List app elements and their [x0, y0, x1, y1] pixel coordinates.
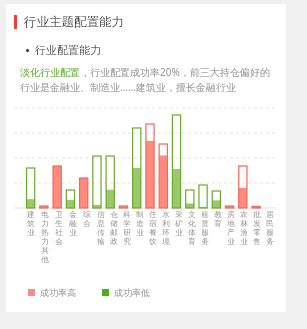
staticText: 融 [69, 219, 77, 228]
staticText: 育 [214, 219, 222, 228]
staticText: 务 [201, 237, 209, 246]
staticText: 业 [240, 237, 248, 246]
staticText: 合 [83, 219, 91, 228]
staticText: 成功率高 [40, 287, 76, 298]
staticText: 饮 [149, 237, 157, 246]
staticText: 租 [201, 210, 209, 219]
staticText: 赁 [201, 219, 209, 228]
staticText: 息 [97, 219, 105, 228]
staticText: 水 [162, 210, 170, 219]
staticText: 渔 [240, 228, 248, 237]
staticText: 行业配置能力 [35, 43, 101, 57]
staticText: 业 [136, 228, 144, 237]
staticText: 体 [188, 228, 196, 237]
staticText: 售 [253, 237, 261, 246]
staticText: 文 [188, 210, 196, 219]
button[interactable]: 行业主题配置能力 [6, 14, 286, 30]
staticText: 务 [266, 237, 274, 246]
staticText: 服 [266, 228, 274, 237]
staticText: 电 [41, 210, 49, 219]
staticText: 零 [253, 228, 261, 237]
staticText: 地 [227, 219, 235, 228]
staticText: 宿 [149, 219, 157, 228]
staticText: 农 [240, 210, 248, 219]
staticText: 其 [41, 246, 49, 255]
button[interactable]: 成功率高 [28, 287, 76, 298]
staticText: 卫 [55, 210, 63, 219]
staticText: 化 [188, 219, 196, 228]
staticText: 输 [97, 237, 105, 246]
staticText: 金 [69, 210, 77, 219]
staticText: 发 [253, 219, 261, 228]
staticText: 业 [27, 228, 35, 237]
staticText: 科 [123, 210, 131, 219]
staticText: 传 [97, 228, 105, 237]
staticText: 究 [123, 237, 131, 246]
staticText: 生 [55, 219, 63, 228]
staticText: 居 [266, 210, 274, 219]
staticText: 产 [227, 228, 235, 237]
staticText: 业 [175, 228, 183, 237]
staticText: 采 [175, 210, 183, 219]
staticText: 建 [27, 210, 35, 219]
staticText: 育 [188, 237, 196, 246]
button[interactable]: 成功率低 [102, 287, 150, 298]
staticText: 利 [162, 219, 170, 228]
staticText: 行业主题配置能力 [24, 14, 124, 30]
staticText: 餐 [149, 228, 157, 237]
staticText: 业 [69, 228, 77, 237]
staticText: 力 [41, 237, 49, 246]
staticText: 成功率低 [114, 287, 150, 298]
staticText: 社 [55, 228, 63, 237]
staticText: 教 [214, 210, 222, 219]
staticText: 力 [41, 219, 49, 228]
staticText: 业 [227, 237, 235, 246]
staticText: 淡化行业配置，行业配置成功率20%，前三大持仓偏好的行业是金融业、制造业……建筑… [20, 65, 278, 94]
staticText: 环 [162, 228, 170, 237]
staticText: 林 [240, 219, 248, 228]
staticText: 研 [123, 228, 131, 237]
staticText: 矿 [175, 219, 183, 228]
staticText: 储 [110, 219, 118, 228]
staticText: 热 [41, 228, 49, 237]
staticText: 房 [227, 210, 235, 219]
staticText: 境 [162, 237, 170, 246]
staticText: 民 [266, 219, 274, 228]
staticText: 制 [136, 210, 144, 219]
staticText: 综 [83, 210, 91, 219]
staticText: 信 [97, 210, 105, 219]
staticText: 批 [253, 210, 261, 219]
staticText: 造 [136, 219, 144, 228]
staticText: 政 [110, 237, 118, 246]
staticText: 筑 [27, 219, 35, 228]
staticText: 仓 [110, 210, 118, 219]
staticText: 他 [41, 255, 49, 264]
staticText: 会 [55, 237, 63, 246]
staticText: 学 [123, 219, 131, 228]
staticText: 服 [201, 228, 209, 237]
staticText: 邮 [110, 228, 118, 237]
staticText: 住 [149, 210, 157, 219]
